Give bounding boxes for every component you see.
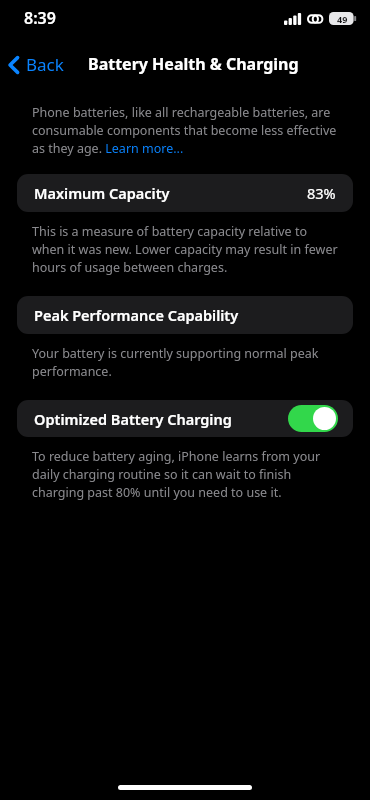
staticText: 83% xyxy=(307,183,336,203)
staticText: Your battery is currently supporting nor… xyxy=(32,345,338,380)
staticText: Phone batteries, like all rechargeable b… xyxy=(32,104,338,157)
staticText: 8:39 xyxy=(24,7,56,29)
button[interactable]: Peak Performance Capability xyxy=(17,296,353,334)
button[interactable]: Optimized Battery Charging xyxy=(17,400,353,437)
staticText: Peak Performance Capability xyxy=(34,305,239,325)
staticText: 49 xyxy=(337,13,348,25)
button[interactable]: Maximum Capacity xyxy=(17,174,353,212)
button[interactable]: Optimized Battery Charging toggle, on xyxy=(288,405,338,432)
staticText: Battery Health & Charging xyxy=(88,53,299,75)
staticText: Optimized Battery Charging xyxy=(34,409,232,429)
staticText: Back xyxy=(26,53,64,76)
staticText: Maximum Capacity xyxy=(34,183,170,203)
staticText: To reduce battery aging, iPhone learns f… xyxy=(32,448,338,501)
staticText: This is a measure of battery capacity re… xyxy=(32,223,338,276)
button[interactable]: Back xyxy=(0,47,74,82)
